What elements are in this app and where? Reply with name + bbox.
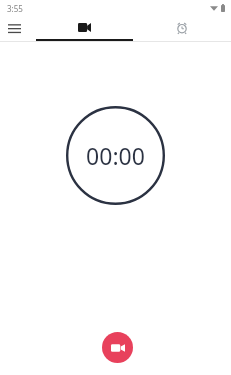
button[interactable]: Start recording <box>102 332 133 363</box>
button[interactable]: Video tab <box>36 16 133 39</box>
staticText: 3:55 <box>7 3 23 14</box>
button[interactable]: Menu <box>0 16 28 39</box>
button[interactable]: Timer 00:00 <box>66 106 165 205</box>
staticText: 00:00 <box>86 140 145 171</box>
button[interactable]: Alarm tab <box>133 16 230 39</box>
